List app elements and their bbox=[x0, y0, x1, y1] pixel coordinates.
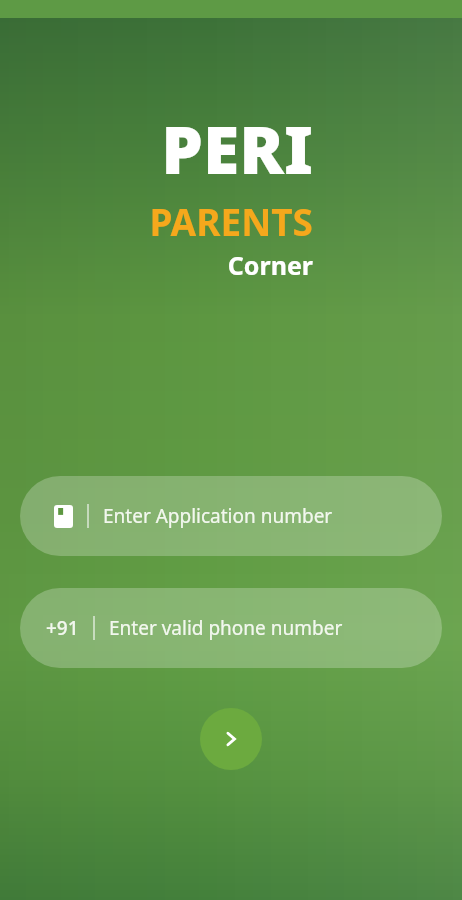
staticText: PERI bbox=[161, 103, 313, 193]
staticText: Corner bbox=[227, 248, 313, 282]
staticText: PARENTS bbox=[149, 196, 313, 246]
staticText: Enter valid phone number bbox=[109, 615, 343, 641]
button[interactable]: +91 bbox=[20, 588, 442, 668]
button[interactable]: Continue bbox=[200, 708, 262, 770]
staticText: +91 bbox=[46, 615, 79, 641]
staticText: Enter Application number bbox=[103, 503, 333, 529]
button[interactable]: Enter Application number bbox=[20, 476, 442, 556]
